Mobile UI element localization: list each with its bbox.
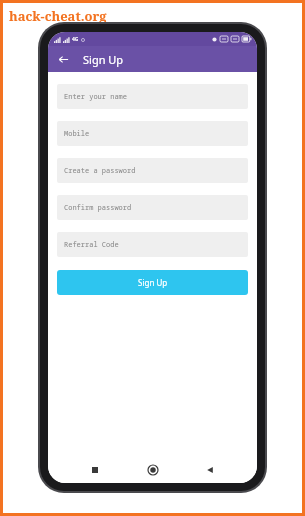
button[interactable]: Back: [53, 49, 73, 69]
button[interactable]: Home: [142, 459, 164, 481]
staticText: Sign Up: [138, 277, 168, 288]
staticText: Sign Up: [83, 52, 124, 67]
staticText: Create a password: [64, 166, 136, 176]
staticText: hack-cheat.org: [9, 7, 107, 25]
button[interactable]: Enter your name: [57, 84, 248, 109]
staticText: Enter your name: [64, 92, 127, 102]
button[interactable]: Referral Code: [57, 232, 248, 257]
button[interactable]: Back: [199, 459, 221, 481]
button[interactable]: Create a password: [57, 158, 248, 183]
staticText: Confirm password: [64, 203, 132, 213]
staticText: Referral Code: [64, 240, 119, 250]
button[interactable]: Confirm password: [57, 195, 248, 220]
staticText: 4G: [72, 36, 79, 43]
button[interactable]: Mobile: [57, 121, 248, 146]
button[interactable]: Recents: [84, 459, 106, 481]
staticText: Mobile: [64, 129, 90, 139]
button[interactable]: Sign Up: [57, 270, 248, 295]
